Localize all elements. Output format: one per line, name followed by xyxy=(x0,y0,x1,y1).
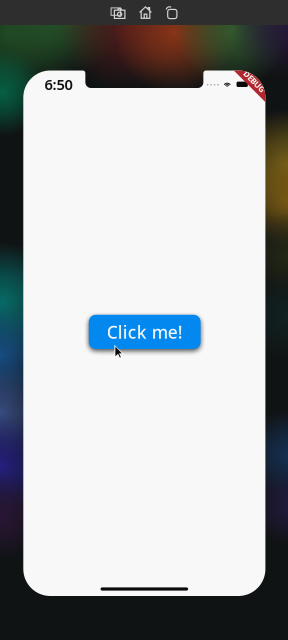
staticText: 6:50 xyxy=(45,75,73,94)
button[interactable]: Click me! xyxy=(89,315,201,349)
staticText: DEBUG xyxy=(241,76,268,87)
button[interactable]: Rotate xyxy=(165,6,177,19)
button[interactable]: Screenshot xyxy=(110,6,125,19)
button[interactable]: Home xyxy=(139,6,152,19)
staticText: Click me! xyxy=(107,320,183,343)
